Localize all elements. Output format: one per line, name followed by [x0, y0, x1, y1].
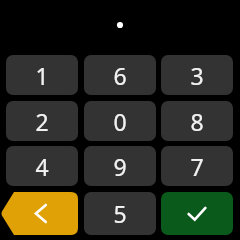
staticText: 5: [113, 198, 127, 229]
button[interactable]: Confirm: [161, 192, 233, 235]
button[interactable]: 9: [84, 146, 156, 186]
staticText: 2: [35, 106, 49, 137]
staticText: 8: [190, 106, 204, 137]
staticText: 0: [113, 106, 127, 137]
staticText: 6: [113, 60, 127, 91]
button[interactable]: 5: [84, 192, 156, 235]
button[interactable]: 2: [6, 101, 78, 141]
button[interactable]: 4: [6, 146, 78, 186]
button[interactable]: 3: [161, 55, 233, 95]
button[interactable]: 1: [6, 55, 78, 95]
button[interactable]: 0: [84, 101, 156, 141]
staticText: 4: [35, 151, 49, 182]
staticText: 7: [190, 151, 204, 182]
staticText: 1: [35, 60, 49, 91]
button[interactable]: 6: [84, 55, 156, 95]
button[interactable]: 7: [161, 146, 233, 186]
button[interactable]: Delete: [0, 192, 78, 235]
staticText: 3: [190, 60, 204, 91]
button[interactable]: 8: [161, 101, 233, 141]
staticText: 9: [113, 151, 127, 182]
